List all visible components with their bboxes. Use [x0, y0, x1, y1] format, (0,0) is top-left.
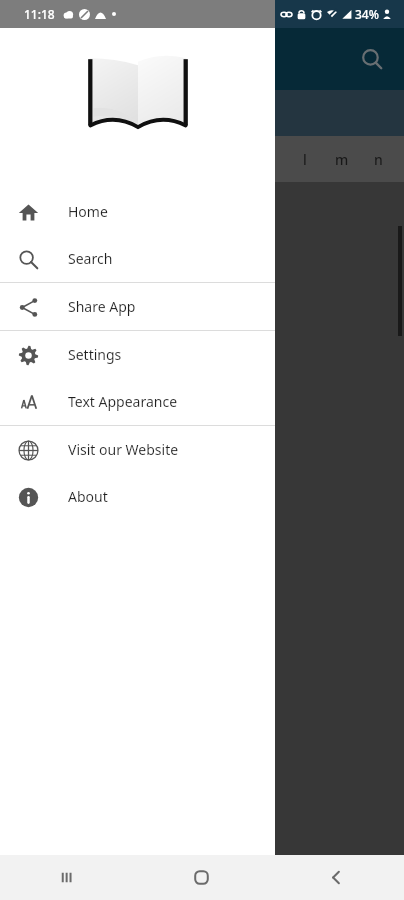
button[interactable]: n — [360, 136, 397, 182]
staticText: About — [68, 487, 108, 506]
staticText: Visit our Website — [68, 440, 179, 459]
button[interactable]: Search — [350, 37, 394, 81]
button[interactable]: Share App — [0, 283, 275, 330]
staticText: Search — [68, 249, 113, 268]
button[interactable]: Back — [269, 855, 404, 900]
button[interactable]: Recents — [0, 855, 134, 900]
button[interactable]: m — [323, 136, 360, 182]
button[interactable]: l — [286, 136, 323, 182]
button[interactable]: Text Appearance — [0, 378, 275, 425]
staticText: Text Appearance — [68, 392, 178, 411]
staticText: n — [374, 150, 383, 169]
staticText: Settings — [68, 345, 122, 364]
button[interactable]: Home — [134, 855, 269, 900]
button[interactable]: About — [0, 473, 275, 520]
button[interactable]: Visit our Website — [0, 426, 275, 473]
staticText: m — [335, 150, 349, 169]
staticText: 34% — [355, 6, 379, 22]
button[interactable]: Settings — [0, 331, 275, 378]
staticText: Share App — [68, 297, 136, 316]
staticText: Home — [68, 202, 108, 221]
button[interactable]: Search — [0, 235, 275, 282]
button[interactable]: Home — [0, 188, 275, 235]
staticText: 11:18 — [24, 6, 55, 22]
staticText: l — [303, 150, 307, 169]
